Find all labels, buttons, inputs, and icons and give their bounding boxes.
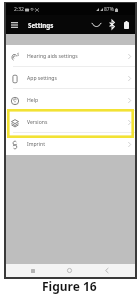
staticText: Hearing aids settings	[27, 53, 78, 60]
staticText: Settings	[28, 21, 54, 29]
staticText: Versions	[27, 119, 48, 126]
button[interactable]: Home	[63, 264, 76, 277]
button[interactable]: Versions	[6, 111, 135, 133]
staticText: Imprint	[27, 141, 46, 148]
button[interactable]: Bluetooth	[104, 17, 119, 32]
staticText: 2:32	[14, 6, 24, 13]
staticText: App settings	[27, 75, 57, 82]
button[interactable]: Help	[6, 89, 135, 111]
button[interactable]: Hearing aids settings	[6, 45, 135, 67]
staticText: Help	[27, 97, 39, 104]
button[interactable]: App settings	[6, 67, 135, 89]
button[interactable]: Battery	[119, 17, 134, 32]
button[interactable]: Imprint	[6, 133, 135, 155]
staticText: Figure 16	[42, 278, 97, 294]
button[interactable]: Hearing aid connection	[89, 17, 104, 32]
staticText: 87%	[104, 6, 114, 13]
button[interactable]: Back	[100, 264, 113, 277]
button[interactable]: Open navigation menu	[7, 18, 21, 32]
button[interactable]: Recent apps	[26, 264, 39, 277]
